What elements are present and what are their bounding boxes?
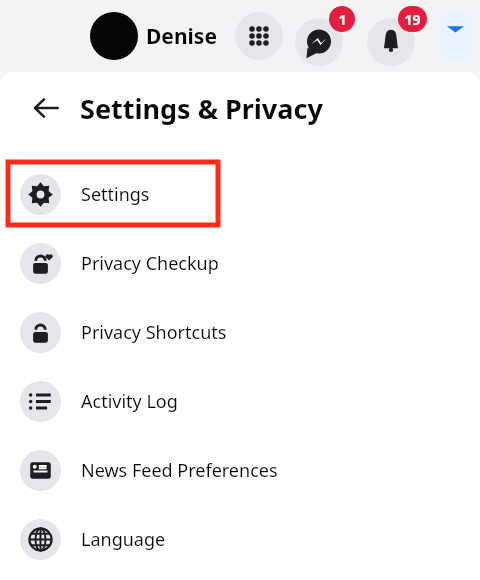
staticText: Settings bbox=[81, 182, 150, 207]
button[interactable]: Activity Log bbox=[0, 367, 480, 436]
button[interactable]: Privacy Shortcuts bbox=[0, 298, 480, 367]
staticText: Settings & Privacy bbox=[80, 90, 323, 127]
staticText: Activity Log bbox=[81, 389, 178, 414]
button[interactable]: Messenger bbox=[295, 18, 343, 66]
button[interactable]: News Feed Preferences bbox=[0, 436, 480, 505]
button[interactable]: Account bbox=[439, 12, 472, 60]
button[interactable]: Language bbox=[0, 505, 480, 574]
staticText: Language bbox=[81, 527, 166, 552]
staticText: Privacy Shortcuts bbox=[81, 320, 227, 345]
button[interactable]: Notifications bbox=[367, 18, 415, 66]
staticText: Denise bbox=[146, 22, 217, 51]
staticText: 1 bbox=[338, 10, 347, 29]
staticText: News Feed Preferences bbox=[81, 458, 278, 483]
staticText: Privacy Checkup bbox=[81, 251, 219, 276]
button[interactable]: Back bbox=[24, 86, 68, 130]
button[interactable]: Menu bbox=[235, 12, 283, 60]
staticText: 19 bbox=[404, 10, 421, 29]
button[interactable]: Settings bbox=[0, 160, 480, 229]
button[interactable]: Denise bbox=[90, 12, 217, 60]
button[interactable]: Privacy Checkup bbox=[0, 229, 480, 298]
